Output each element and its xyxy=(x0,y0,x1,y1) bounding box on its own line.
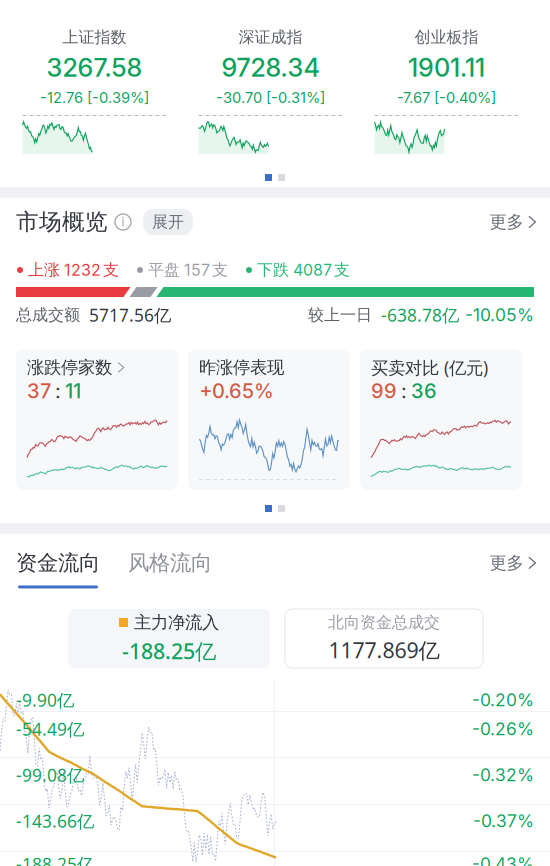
staticText: 99 xyxy=(371,379,397,403)
staticText: -0.20% xyxy=(472,689,534,710)
button[interactable]: 主力净流入 xyxy=(68,609,270,668)
button[interactable]: 更多 xyxy=(490,211,536,233)
button[interactable]: 风格流向 xyxy=(128,550,212,588)
staticText: 1901.11 xyxy=(408,52,485,83)
staticText: 展开 xyxy=(152,212,184,232)
staticText: -9.90亿 xyxy=(16,688,74,712)
staticText: -7.67 [-0.40%] xyxy=(397,89,496,106)
staticText: -12.76 [-0.39%] xyxy=(40,89,149,106)
staticText: 1232 xyxy=(64,260,101,280)
staticText: 支 xyxy=(334,260,350,280)
button[interactable]: 北向资金总成交 xyxy=(285,609,483,668)
staticText: 37 xyxy=(27,379,51,403)
staticText: 市场概览 xyxy=(16,208,108,236)
staticText: -188.25亿 xyxy=(122,636,216,665)
staticText: 涨跌停家数 xyxy=(27,357,112,378)
staticText: i xyxy=(121,215,124,229)
staticText: -0.32% xyxy=(472,764,534,785)
staticText: 下跌 xyxy=(257,260,289,280)
staticText: 支 xyxy=(212,260,228,280)
staticText: 资金流向 xyxy=(16,550,100,576)
staticText: -0.26% xyxy=(472,718,534,739)
staticText: 深证成指 xyxy=(238,27,302,47)
button[interactable]: 展开 xyxy=(143,209,193,235)
staticText: 总成交额 xyxy=(16,305,80,325)
staticText: 11 xyxy=(65,379,81,403)
button[interactable]: 资金流向 xyxy=(16,550,100,588)
button[interactable]: 昨涨停表现 xyxy=(188,349,350,490)
staticText: 北向资金总成交 xyxy=(328,612,440,633)
staticText: : xyxy=(55,379,61,403)
button[interactable]: 上证指数 xyxy=(11,10,178,163)
staticText: -143.66亿 xyxy=(16,809,94,833)
button[interactable]: 创业板指 xyxy=(363,10,530,163)
staticText: -188.25亿 xyxy=(16,852,94,866)
staticText: +0.65% xyxy=(199,379,274,403)
staticText: 上涨 xyxy=(28,260,60,280)
staticText: -0.37% xyxy=(473,810,534,831)
button[interactable]: 买卖对比 (亿元) xyxy=(360,349,522,490)
staticText: -638.78亿 xyxy=(381,303,459,327)
staticText: 较上一日 xyxy=(308,305,372,325)
staticText: 36 xyxy=(411,379,437,403)
staticText: -99.08亿 xyxy=(16,763,84,787)
staticText: 风格流向 xyxy=(128,550,212,576)
staticText: 支 xyxy=(103,260,119,280)
staticText: 上证指数 xyxy=(62,27,126,47)
staticText: 创业板指 xyxy=(414,27,478,47)
button[interactable]: 更多 xyxy=(490,552,536,574)
staticText: 平盘 xyxy=(148,260,180,280)
staticText: 157 xyxy=(184,260,210,280)
staticText: 更多 xyxy=(490,211,524,233)
staticText: 1177.869亿 xyxy=(328,636,439,665)
button[interactable]: 深证成指 xyxy=(187,10,354,163)
staticText: 昨涨停表现 xyxy=(199,357,284,378)
staticText: 买卖对比 (亿元) xyxy=(371,356,488,379)
staticText: : xyxy=(401,379,407,403)
staticText: 3267.58 xyxy=(46,52,142,83)
staticText: -0.43% xyxy=(472,853,534,866)
staticText: -30.70 [-0.31%] xyxy=(216,89,325,106)
staticText: 5717.56亿 xyxy=(89,303,171,327)
staticText: 9728.34 xyxy=(221,52,319,83)
staticText: 更多 xyxy=(490,552,524,574)
staticText: -54.49亿 xyxy=(16,717,84,741)
button[interactable]: 涨跌停家数 xyxy=(16,349,178,490)
staticText: 4087 xyxy=(293,260,332,280)
staticText: -10.05% xyxy=(465,304,534,325)
staticText: 主力净流入 xyxy=(134,612,219,633)
